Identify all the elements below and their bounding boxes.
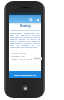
- staticText: Add to favourite list: [14, 73, 37, 76]
- staticText: Details: [34, 57, 41, 60]
- staticText: Lorem ipsum dolor sit amet, consectetur …: [10, 29, 40, 48]
- staticText: Added : 24 Nov 2016: [11, 58, 33, 61]
- button[interactable]: Search: [27, 16, 34, 23]
- button[interactable]: Home: [22, 85, 28, 91]
- button[interactable]: More options: [34, 16, 41, 23]
- staticText: Destiny: [20, 24, 31, 28]
- button[interactable]: Add to favourite list: [9, 71, 41, 78]
- staticText: Category : cat: [11, 55, 26, 58]
- button[interactable]: Details: [33, 57, 42, 60]
- staticText: Author : name: [11, 52, 26, 55]
